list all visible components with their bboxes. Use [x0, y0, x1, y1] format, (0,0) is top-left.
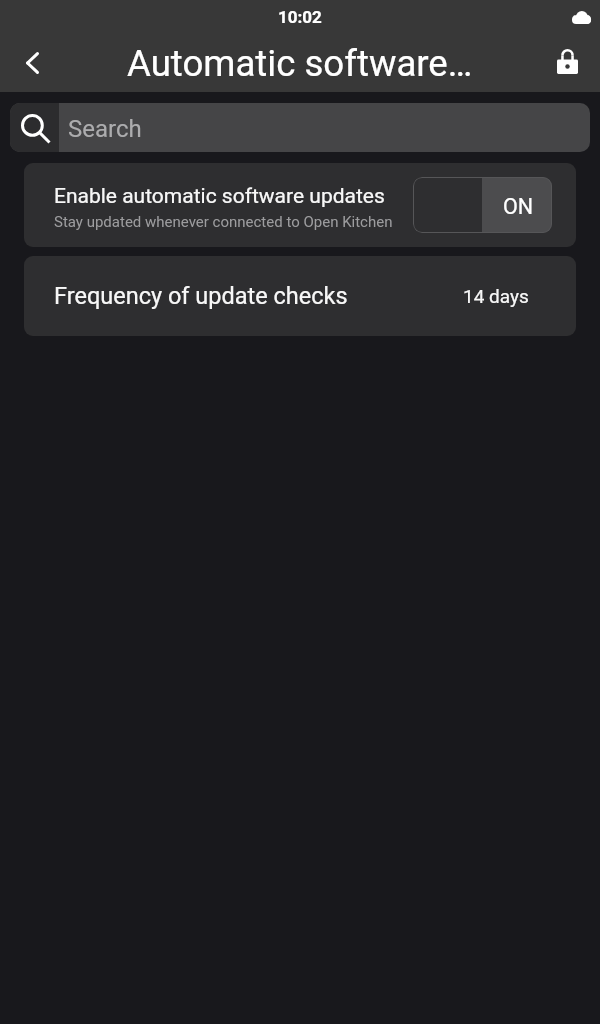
staticText: Frequency of update checks — [54, 282, 463, 310]
button[interactable]: Frequency of update checks — [24, 256, 576, 336]
staticText: Stay updated whenever connected to Open … — [54, 213, 393, 231]
staticText: 14 days — [463, 285, 529, 307]
button[interactable]: Enable automatic software updates — [24, 163, 576, 247]
staticText: ON — [503, 194, 534, 219]
button[interactable]: Toggle automatic updates — [413, 177, 552, 233]
staticText: 10:02 — [278, 7, 322, 27]
button[interactable]: Back — [0, 34, 62, 92]
staticText: Enable automatic software updates — [54, 184, 385, 209]
staticText: Automatic software… — [127, 42, 473, 85]
button[interactable]: Search — [10, 103, 590, 152]
button[interactable]: Lock — [538, 34, 600, 92]
staticText: Search — [68, 115, 142, 143]
